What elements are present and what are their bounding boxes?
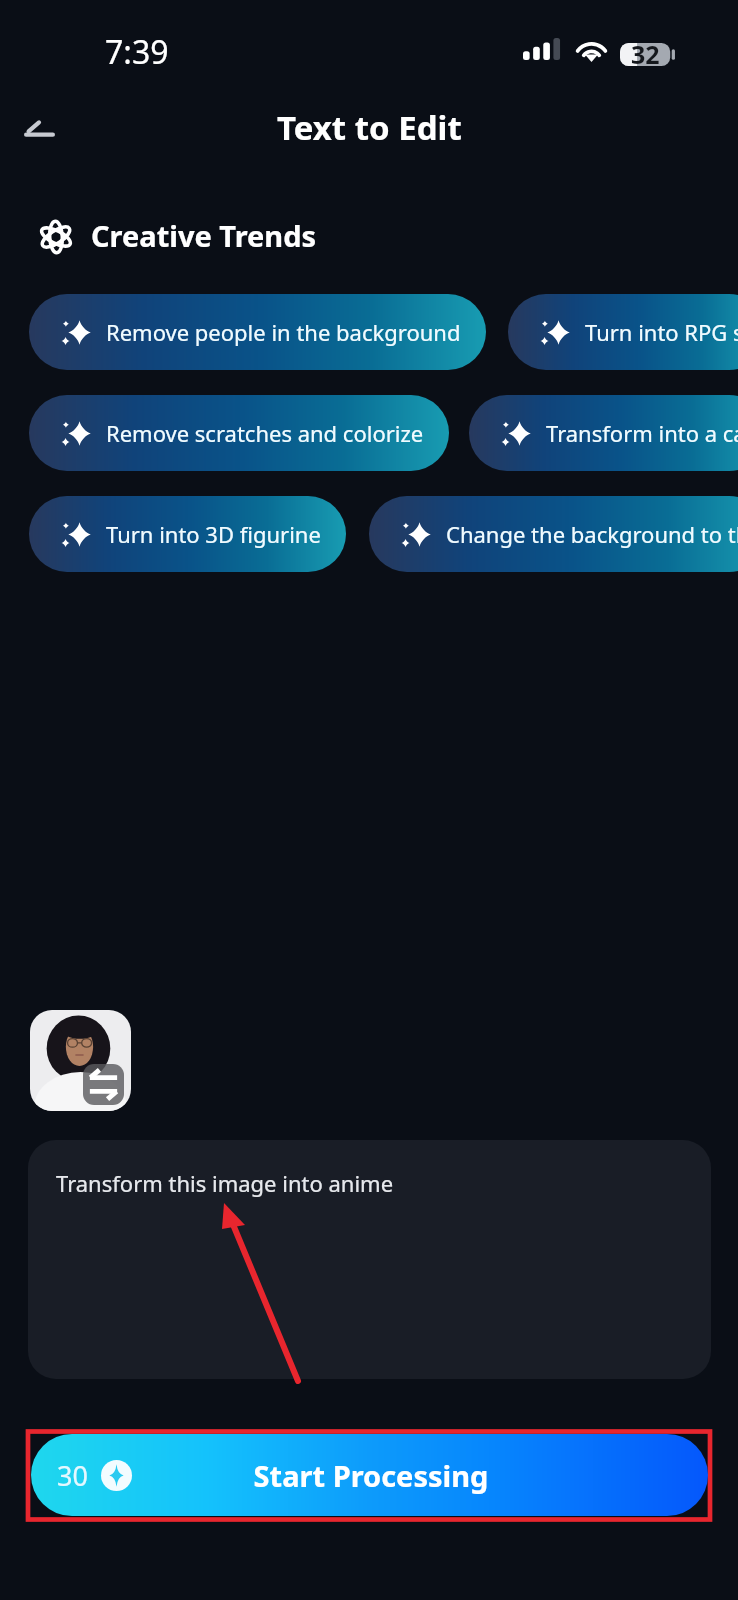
staticText: Turn into 3D figurine (106, 519, 321, 549)
button[interactable]: Back (4, 99, 72, 167)
staticText: 32 (631, 37, 660, 71)
staticText: Transform into a cartoon (546, 418, 738, 448)
staticText: 7:39 (105, 30, 169, 74)
button[interactable]: Remove scratches and colorize (29, 395, 449, 471)
staticText: Remove people in the background (106, 317, 461, 347)
staticText: Start Processing (83, 1456, 659, 1495)
staticText: Remove scratches and colorize (106, 418, 424, 448)
button[interactable]: Selected image (30, 1010, 131, 1111)
button[interactable]: Swap image (83, 1064, 124, 1105)
staticText: Transform this image into anime (56, 1168, 394, 1198)
staticText: Turn into RPG style (585, 317, 738, 347)
button[interactable]: Turn into 3D figurine (29, 496, 346, 572)
button[interactable]: Remove people in the background (29, 294, 486, 370)
button[interactable]: 30 (31, 1434, 708, 1516)
button[interactable]: Turn into RPG style (508, 294, 738, 370)
staticText: Creative Trends (91, 216, 317, 255)
staticText: 30 (57, 1457, 88, 1494)
button[interactable]: Transform this image into anime (28, 1140, 711, 1379)
staticText: Change the background to the beach (446, 519, 738, 549)
button[interactable]: Transform into a cartoon (469, 395, 738, 471)
button[interactable]: Change the background to the beach (369, 496, 738, 572)
staticText: Text to Edit (277, 105, 462, 150)
